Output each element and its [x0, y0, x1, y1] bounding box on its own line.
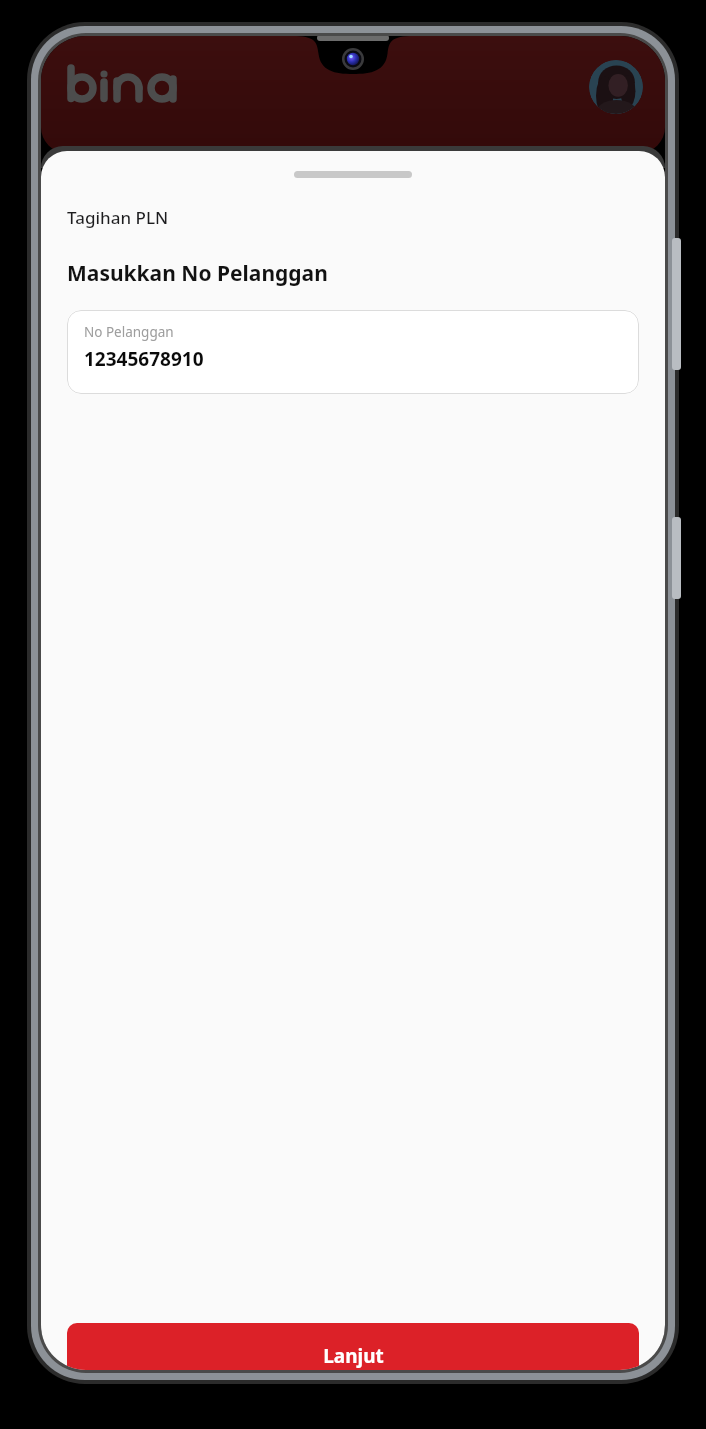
staticText: 12345678910 — [84, 346, 204, 372]
staticText: Tagihan PLN — [67, 206, 169, 229]
staticText: Lanjut — [323, 1343, 384, 1369]
button[interactable]: Profile — [589, 60, 643, 114]
staticText: Masukkan No Pelanggan — [67, 259, 328, 288]
button[interactable]: bina home — [63, 62, 191, 112]
button[interactable]: Lanjut — [67, 1323, 639, 1370]
button[interactable]: No Pelanggan — [67, 310, 639, 394]
staticText: No Pelanggan — [84, 323, 174, 341]
